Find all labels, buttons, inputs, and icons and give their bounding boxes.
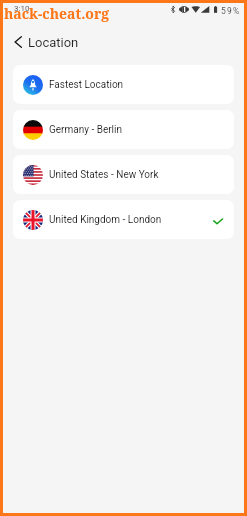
button[interactable]: Fastest Location <box>13 65 234 104</box>
staticText: 59% <box>221 6 241 16</box>
staticText: 3:10 <box>14 4 30 13</box>
button[interactable]: United Kingdom - London <box>13 200 234 239</box>
staticText: United Kingdom - London <box>49 214 162 226</box>
button[interactable]: Germany - Berlin <box>13 110 234 149</box>
staticText: Germany - Berlin <box>49 124 122 136</box>
button[interactable]: Back <box>6 30 30 54</box>
staticText: Location <box>28 35 79 50</box>
staticText: Fastest Location <box>49 79 124 91</box>
staticText: United States - New York <box>49 169 159 181</box>
staticText: hack-cheat.org <box>4 4 110 23</box>
button[interactable]: United States - New York <box>13 155 234 194</box>
